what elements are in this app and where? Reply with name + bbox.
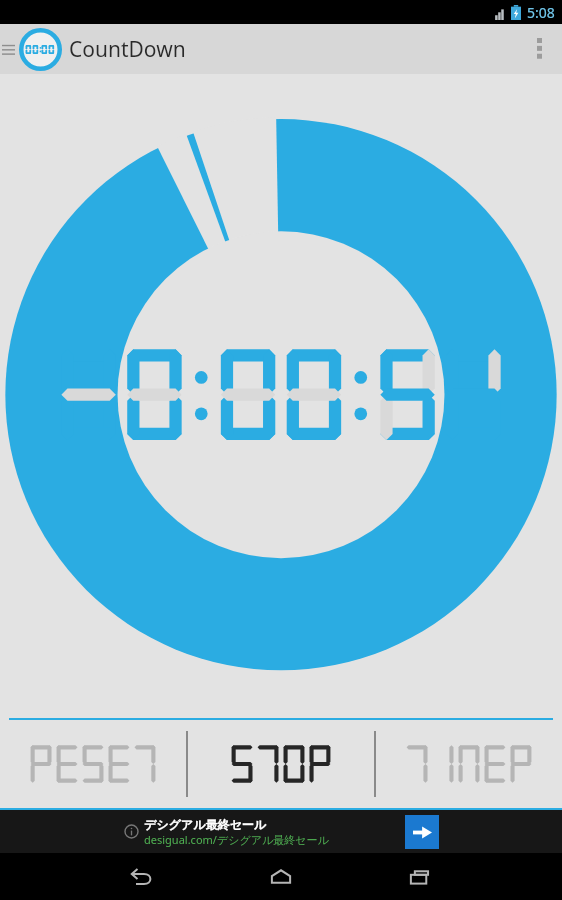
button[interactable] <box>376 720 562 808</box>
button[interactable]: Home <box>250 853 312 900</box>
staticText: デシグアル最終セール <box>144 817 266 832</box>
button[interactable]: Open advertisement <box>405 815 439 849</box>
button[interactable]: More options <box>516 24 562 74</box>
button[interactable]: CountDown icon <box>16 25 64 73</box>
staticText: 5:08 <box>527 3 555 22</box>
staticText: desigual.com/デシグアル最終セール <box>144 832 329 847</box>
staticText: CountDown <box>69 35 186 64</box>
button[interactable]: Back <box>110 853 172 900</box>
button[interactable]: デシグアル最終セール <box>124 810 439 853</box>
button[interactable] <box>188 720 374 808</box>
button[interactable]: Recent apps <box>390 853 452 900</box>
button[interactable]: Navigation drawer <box>0 24 16 74</box>
button[interactable] <box>0 720 186 808</box>
